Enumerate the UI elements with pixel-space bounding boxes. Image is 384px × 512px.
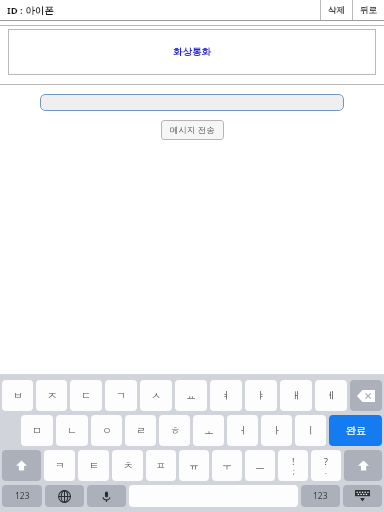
button[interactable]: ㅓ <box>227 415 258 446</box>
staticText: ! <box>292 455 295 467</box>
staticText: 123 <box>15 490 30 502</box>
staticText: 화상통화 <box>173 46 211 58</box>
button[interactable]: ㅜ <box>212 450 242 481</box>
staticText: ㅕ <box>221 389 231 402</box>
button[interactable]: ! <box>278 450 308 481</box>
button[interactable]: 뒤로 <box>353 0 384 21</box>
button[interactable]: ㅈ <box>36 380 67 411</box>
button[interactable]: ㅌ <box>78 450 109 481</box>
button[interactable]: Shift <box>344 450 382 481</box>
staticText: ; <box>293 467 295 477</box>
button[interactable]: Change language <box>45 485 84 507</box>
button[interactable]: ㄷ <box>70 380 102 411</box>
button[interactable]: Voice input <box>87 485 126 507</box>
staticText: ㅂ <box>13 389 23 402</box>
staticText: ㅑ <box>256 389 266 402</box>
staticText: ㅈ <box>47 389 57 402</box>
button[interactable]: ㄱ <box>105 380 137 411</box>
staticText: ㄴ <box>67 424 77 437</box>
button[interactable]: ㅊ <box>112 450 143 481</box>
staticText: ㅣ <box>306 424 316 437</box>
staticText: ㅍ <box>156 459 166 472</box>
button[interactable]: ID : 아이폰 <box>0 0 320 21</box>
staticText: ㅓ <box>238 424 248 437</box>
button[interactable]: Backspace <box>350 380 382 411</box>
button[interactable]: ㅋ <box>44 450 75 481</box>
staticText: ㅜ <box>222 459 232 472</box>
staticText: ㅋ <box>55 459 65 472</box>
staticText: ㅇ <box>102 424 112 437</box>
button[interactable]: ㄹ <box>125 415 156 446</box>
button[interactable]: ㅍ <box>146 450 176 481</box>
button[interactable]: ㅏ <box>261 415 292 446</box>
staticText: ㅁ <box>32 424 42 437</box>
staticText: ㅌ <box>89 459 99 472</box>
staticText: ㄷ <box>81 389 91 402</box>
button[interactable] <box>40 94 344 111</box>
button[interactable]: 123 <box>301 485 340 507</box>
staticText: ㅊ <box>123 459 133 472</box>
button[interactable]: 메시지 전송 <box>161 120 224 140</box>
staticText: 완료 <box>346 424 366 437</box>
button[interactable]: ㅠ <box>179 450 209 481</box>
staticText: ㅠ <box>189 459 199 472</box>
staticText: ㅏ <box>272 424 282 437</box>
staticText: ㅗ <box>204 424 214 437</box>
button[interactable]: ㅁ <box>21 415 53 446</box>
button[interactable]: ㅅ <box>140 380 172 411</box>
button[interactable]: 123 <box>2 485 42 507</box>
staticText: 메시지 전송 <box>170 124 215 136</box>
staticText: 123 <box>313 490 328 502</box>
button[interactable]: ㅔ <box>315 380 347 411</box>
staticText: 삭제 <box>328 5 345 16</box>
button[interactable]: ㅂ <box>2 380 33 411</box>
button[interactable]: Hide keyboard <box>343 485 382 507</box>
button[interactable]: Shift <box>2 450 41 481</box>
button[interactable]: ㅡ <box>245 450 275 481</box>
staticText: ㄹ <box>136 424 146 437</box>
button[interactable]: 삭제 <box>321 0 352 21</box>
button[interactable]: ㅇ <box>91 415 122 446</box>
staticText: 뒤로 <box>360 5 377 16</box>
staticText: ㅅ <box>151 389 161 402</box>
button[interactable]: ㅕ <box>210 380 242 411</box>
button[interactable]: ㅗ <box>193 415 224 446</box>
button[interactable]: 완료 <box>329 415 382 446</box>
staticText: ID : 아이폰 <box>7 4 54 17</box>
staticText: ㅐ <box>291 389 301 402</box>
button[interactable]: ? <box>311 450 341 481</box>
button[interactable]: ㅣ <box>295 415 326 446</box>
button[interactable]: ㅐ <box>280 380 312 411</box>
staticText: ㅡ <box>255 459 265 472</box>
staticText: ㄱ <box>116 389 126 402</box>
button[interactable]: ㅑ <box>245 380 277 411</box>
staticText: ㅛ <box>186 389 196 402</box>
button[interactable]: ㄴ <box>56 415 88 446</box>
staticText: ㅔ <box>326 389 336 402</box>
staticText: ? <box>324 455 328 467</box>
staticText: ㅎ <box>170 424 180 437</box>
button[interactable]: ㅎ <box>159 415 190 446</box>
staticText: . <box>325 467 327 477</box>
button[interactable]: ㅛ <box>175 380 207 411</box>
